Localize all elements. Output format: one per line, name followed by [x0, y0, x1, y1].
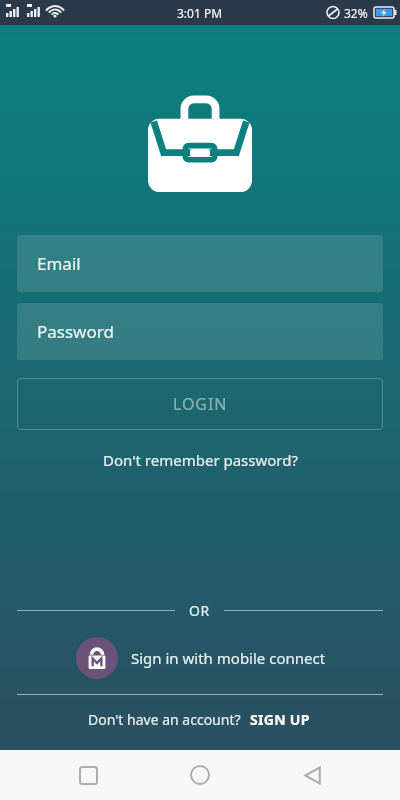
button[interactable]: Email [17, 235, 383, 292]
staticText: Email [37, 252, 81, 275]
other: Sign in with mobile connect [76, 637, 118, 679]
staticText: Don't remember password? [103, 450, 298, 470]
staticText: Don't have an account? [88, 710, 241, 729]
button[interactable]: Don't remember password? [91, 445, 310, 475]
button[interactable]: Recent apps [64, 751, 112, 799]
button[interactable]: SIGN UP [248, 707, 312, 732]
other: App logo [148, 98, 252, 192]
button[interactable]: Password [17, 303, 383, 360]
button[interactable]: LOGIN [17, 378, 383, 430]
staticText: 32% [344, 5, 368, 21]
button[interactable]: Sign in with mobile connect [0, 632, 400, 684]
staticText: OR [189, 601, 210, 620]
staticText: Sign in with mobile connect [131, 648, 326, 668]
button[interactable]: Back [288, 751, 336, 799]
staticText: 3:01 PM [177, 5, 223, 21]
staticText: SIGN UP [250, 710, 310, 729]
staticText: LOGIN [173, 393, 228, 415]
button[interactable]: Home [176, 751, 224, 799]
staticText: Password [37, 320, 114, 343]
